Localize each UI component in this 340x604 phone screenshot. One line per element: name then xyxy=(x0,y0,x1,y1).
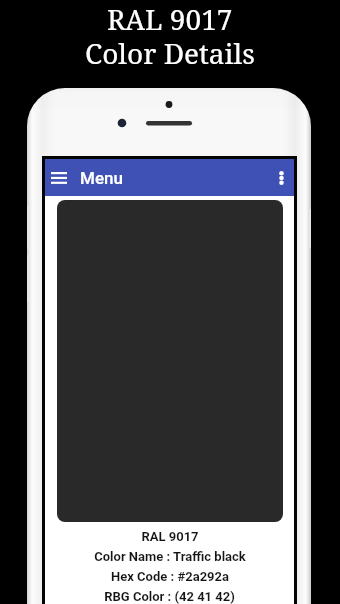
staticText: RBG Color : (42 41 42) xyxy=(104,589,235,604)
staticText: Color Name : Traffic black xyxy=(94,549,246,564)
staticText: Hex Code : #2a292a xyxy=(111,569,229,584)
button[interactable] xyxy=(57,200,283,522)
staticText: RAL 9017 xyxy=(141,529,199,544)
button[interactable]: Open navigation menu xyxy=(46,165,72,191)
staticText: Menu xyxy=(80,168,123,188)
staticText: Color Details xyxy=(85,34,255,72)
staticText: RAL 9017 xyxy=(107,0,233,38)
button[interactable]: More options xyxy=(268,165,294,191)
